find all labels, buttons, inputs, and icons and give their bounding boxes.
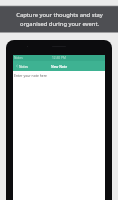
staticText: Notes [19,64,29,68]
staticText: 12:30 PM [52,56,66,60]
staticText: Capture your thoughts and stay organised… [16,11,103,28]
staticText: Enter your note here [14,73,47,78]
staticText: New Note [51,64,68,69]
button[interactable]: Back to Notes [13,64,45,68]
staticText: Notes [14,56,23,60]
